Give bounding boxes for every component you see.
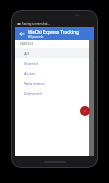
staticText: WeChi Express Tracking (28, 29, 79, 35)
button[interactable]: New status (15, 78, 89, 88)
staticText: Starred (24, 61, 38, 66)
staticText: PARCELS (20, 42, 34, 46)
button[interactable]: Delivered (15, 88, 89, 98)
button[interactable]: Back (15, 27, 28, 40)
button[interactable]: Active (15, 68, 89, 78)
staticText: Saving screenshot… (22, 22, 50, 26)
button[interactable]: All (15, 48, 89, 58)
button[interactable]: Starred (15, 58, 89, 68)
staticText: New status (24, 81, 45, 86)
button[interactable]: Add parcel (80, 106, 90, 116)
staticText: All (24, 51, 29, 56)
staticText: Active (24, 71, 36, 76)
staticText: Delivered (24, 91, 42, 96)
staticText: All parcels (28, 35, 44, 39)
